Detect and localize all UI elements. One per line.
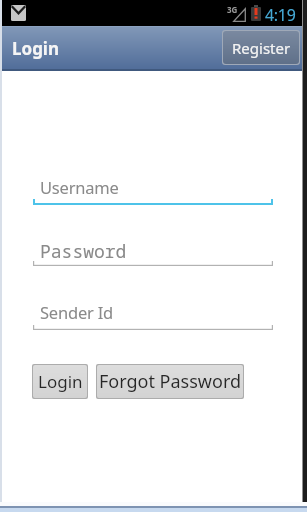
staticText: Username — [40, 176, 119, 198]
staticText: Password — [40, 239, 127, 264]
button[interactable] — [33, 294, 273, 332]
staticText: Register — [232, 38, 291, 58]
button[interactable]: Register — [222, 30, 300, 65]
staticText: Login — [12, 37, 60, 60]
button[interactable]: Login — [32, 364, 88, 399]
button[interactable] — [33, 230, 273, 268]
staticText: 4:19 — [265, 4, 296, 26]
staticText: 3G — [227, 4, 238, 15]
button[interactable]: Forgot Password — [96, 364, 244, 399]
button[interactable] — [33, 168, 273, 206]
staticText: Login — [38, 370, 83, 393]
staticText: Sender Id — [40, 301, 114, 323]
staticText: Forgot Password — [99, 369, 242, 394]
